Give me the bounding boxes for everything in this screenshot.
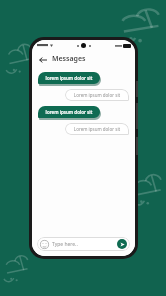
staticText: Messages xyxy=(52,54,86,64)
button[interactable]: Lorem ipsum dolor sit amet xyxy=(65,89,129,101)
button[interactable]: Insert emoji xyxy=(40,240,49,249)
staticText: Lorem ipsum dolor sit amet xyxy=(71,92,123,98)
staticText: Type here.. xyxy=(52,241,78,248)
button[interactable]: Insert emoji xyxy=(37,237,130,251)
button[interactable]: Lorem ipsum dolor sit amet xyxy=(65,123,129,135)
staticText: lorem ipsum dolor sit amet xyxy=(44,75,94,81)
button[interactable]: lorem ipsum dolor sit amet xyxy=(38,106,100,118)
button[interactable]: lorem ipsum dolor sit amet xyxy=(38,72,100,84)
button[interactable]: Send xyxy=(117,239,127,249)
staticText: Lorem ipsum dolor sit amet xyxy=(71,126,123,132)
button[interactable]: Back xyxy=(37,54,48,65)
staticText: lorem ipsum dolor sit amet xyxy=(44,109,94,115)
